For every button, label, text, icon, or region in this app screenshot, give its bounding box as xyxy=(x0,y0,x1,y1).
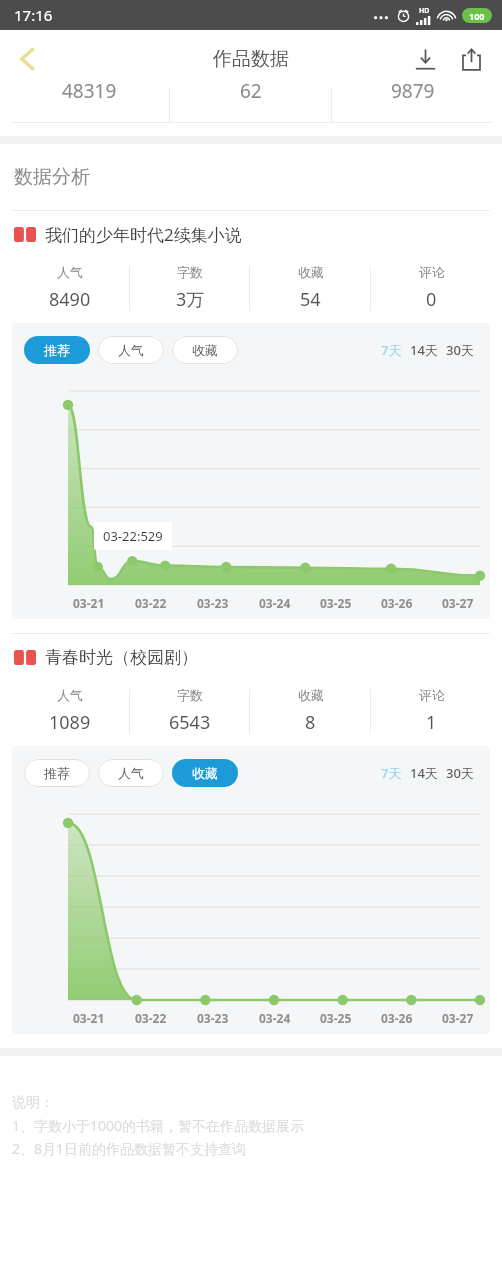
button[interactable]: 人气 xyxy=(98,336,164,364)
staticText: 7天 xyxy=(381,764,402,782)
staticText: 8490 xyxy=(49,287,91,312)
staticText: 1、字数小于1000的书籍，暂不在作品数据展示 xyxy=(12,1116,305,1135)
staticText: 1 xyxy=(426,710,437,735)
button[interactable]: 我们的少年时代2续集小说 xyxy=(14,211,502,257)
staticText: 03-26 xyxy=(381,1010,413,1026)
button[interactable]: 推荐 xyxy=(24,336,90,364)
staticText: 8 xyxy=(305,710,316,735)
staticText: 我们的少年时代2续集小说 xyxy=(45,223,242,246)
staticText: 03-24 xyxy=(259,595,291,611)
staticText: 收藏 xyxy=(298,264,324,280)
staticText: 评论 xyxy=(419,687,445,703)
staticText: 0 xyxy=(426,287,437,312)
staticText: 17:16 xyxy=(14,5,53,25)
staticText: 03-22:529 xyxy=(103,527,163,545)
staticText: 收藏 xyxy=(192,342,218,358)
staticText: 推荐 xyxy=(44,765,70,781)
staticText: 100 xyxy=(469,10,485,22)
button[interactable]: Download xyxy=(402,36,448,82)
button[interactable]: 青春时光（校园剧） xyxy=(14,634,502,680)
staticText: 作品数据 xyxy=(213,47,289,71)
staticText: 人气 xyxy=(57,264,83,280)
staticText: 数据分析 xyxy=(14,165,90,189)
staticText: 评论 xyxy=(419,264,445,280)
staticText: 收藏 xyxy=(192,765,218,781)
staticText: 7天 xyxy=(381,341,402,359)
staticText: 青春时光（校园剧） xyxy=(45,647,198,668)
staticText: 14天 xyxy=(410,341,438,359)
staticText: 03-25 xyxy=(320,1010,352,1026)
button[interactable]: Share xyxy=(448,36,494,82)
staticText: 3万 xyxy=(176,287,205,312)
staticText: 03-25 xyxy=(320,595,352,611)
staticText: 推荐 xyxy=(44,342,70,358)
button[interactable]: 30天 xyxy=(442,760,478,786)
button[interactable]: 7天 xyxy=(377,760,406,786)
staticText: 人气 xyxy=(118,765,144,781)
staticText: 54 xyxy=(300,287,321,312)
staticText: 9879 xyxy=(391,78,435,104)
staticText: 14天 xyxy=(410,764,438,782)
button[interactable]: 收藏 xyxy=(172,336,238,364)
staticText: 字数 xyxy=(177,264,203,280)
staticText: 03-21 xyxy=(73,1010,105,1026)
staticText: 03-23 xyxy=(197,595,229,611)
button[interactable]: 收藏 xyxy=(172,759,238,787)
staticText: 人气 xyxy=(57,687,83,703)
staticText: 收藏 xyxy=(298,687,324,703)
staticText: HD xyxy=(419,6,430,16)
button[interactable]: 14天 xyxy=(406,337,442,363)
staticText: 03-27 xyxy=(442,1010,474,1026)
button[interactable]: 14天 xyxy=(406,760,442,786)
staticText: 2、8月1日前的作品数据暂不支持查询 xyxy=(12,1139,247,1158)
staticText: 字数 xyxy=(177,687,203,703)
staticText: 30天 xyxy=(446,764,474,782)
staticText: 03-21 xyxy=(73,595,105,611)
staticText: 03-22 xyxy=(135,595,167,611)
staticText: 03-23 xyxy=(197,1010,229,1026)
button[interactable]: 7天 xyxy=(377,337,406,363)
staticText: 03-27 xyxy=(442,595,474,611)
staticText: 62 xyxy=(240,78,262,104)
staticText: 03-24 xyxy=(259,1010,291,1026)
staticText: 人气 xyxy=(118,342,144,358)
button[interactable]: Back xyxy=(0,31,56,87)
staticText: 03-26 xyxy=(381,595,413,611)
staticText: 说明： xyxy=(12,1094,54,1112)
staticText: 1089 xyxy=(49,710,91,735)
staticText: 30天 xyxy=(446,341,474,359)
button[interactable]: 人气 xyxy=(98,759,164,787)
staticText: 48319 xyxy=(62,78,117,104)
button[interactable]: 推荐 xyxy=(24,759,90,787)
button[interactable]: 30天 xyxy=(442,337,478,363)
staticText: 03-22 xyxy=(135,1010,167,1026)
staticText: 6543 xyxy=(169,710,211,735)
